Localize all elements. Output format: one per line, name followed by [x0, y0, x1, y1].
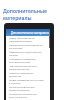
staticText: График проведения консультаций в этом го…	[9, 79, 45, 84]
staticText: Дополнительные материалы	[11, 31, 49, 35]
staticText: Перечень необходимых документов	[9, 72, 45, 77]
staticText: Методические рекомендации по организации	[9, 44, 45, 49]
staticText: Информационное письмо о приёме документо…	[9, 65, 45, 70]
button[interactable]: Информационное письмо о приёме документо…	[6, 64, 50, 71]
button[interactable]: Дополнительные материалы	[6, 29, 50, 36]
staticText: материалы	[3, 15, 32, 22]
staticText: Положение о проведении итоговой аттестац…	[9, 58, 45, 63]
button[interactable]: График проведения консультаций в этом го…	[6, 78, 50, 85]
staticText: Дополнительные	[3, 8, 47, 15]
staticText: Приказ Министерства об утверждении поряд…	[9, 37, 45, 42]
staticText: Расписание вступительных испытаний в вуз…	[9, 93, 45, 98]
button[interactable]: Федеральный государственный стандарт	[6, 50, 50, 57]
button[interactable]: Методические рекомендации по организации	[6, 43, 50, 50]
staticText: Федеральный государственный стандарт	[9, 51, 45, 56]
button[interactable]: Приказ Министерства об утверждении поряд…	[6, 36, 50, 43]
button[interactable]: Положение о проведении итоговой аттестац…	[6, 57, 50, 64]
button[interactable]: Перечень необходимых документов	[6, 71, 50, 78]
button[interactable]: Расписание вступительных испытаний в вуз…	[6, 92, 50, 99]
staticText: Контактная информация приёмной комиссии	[9, 86, 45, 91]
button[interactable]: Контактная информация приёмной комиссии	[6, 85, 50, 92]
